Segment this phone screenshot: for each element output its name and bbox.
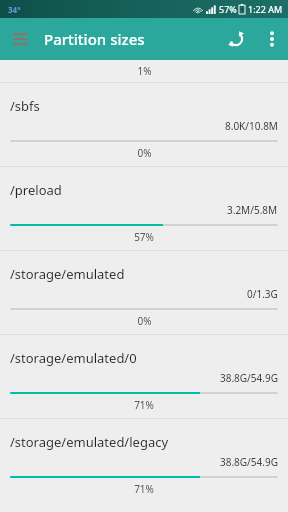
staticText: /storage/emulated/0 — [10, 349, 137, 367]
staticText: 38.8G/54.9G — [220, 455, 278, 469]
staticText: /preload — [10, 181, 62, 199]
staticText: 57% — [134, 230, 154, 244]
staticText: 8.0K/10.8M — [225, 119, 278, 133]
button[interactable]: /storage/emulated/0 — [0, 335, 288, 418]
staticText: /sbfs — [10, 97, 40, 115]
staticText: 71% — [134, 482, 154, 496]
staticText: 0% — [137, 314, 152, 328]
staticText: 0/1.3G — [247, 287, 278, 301]
staticText: 0% — [137, 146, 152, 160]
staticText: 38.8G/54.9G — [220, 371, 278, 385]
button[interactable]: /storage/emulated — [0, 251, 288, 334]
staticText: 3.2M/5.8M — [227, 203, 278, 217]
button[interactable]: /sbfs — [0, 83, 288, 166]
button[interactable]: Refresh — [216, 19, 256, 59]
staticText: Partition sizes — [44, 29, 145, 49]
staticText: 1:22 AM — [248, 3, 283, 15]
button[interactable]: /preload — [0, 167, 288, 250]
staticText: 71% — [134, 398, 154, 412]
staticText: /storage/emulated — [10, 265, 125, 283]
button[interactable]: More options — [256, 23, 288, 55]
staticText: /storage/emulated/legacy — [10, 433, 169, 451]
button[interactable]: /storage/emulated/legacy — [0, 419, 288, 502]
staticText: 1% — [137, 64, 152, 78]
staticText: 57% — [219, 3, 237, 15]
button[interactable]: Open navigation drawer — [0, 19, 40, 59]
staticText: 34° — [8, 4, 21, 15]
button[interactable]: 1% — [0, 60, 288, 82]
